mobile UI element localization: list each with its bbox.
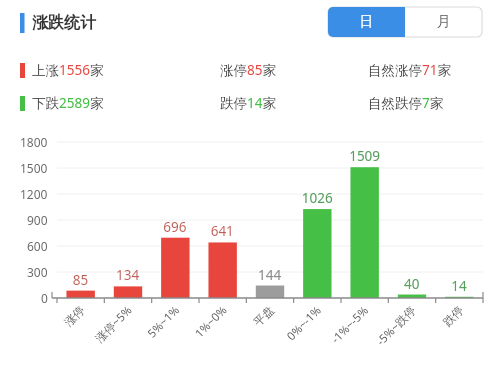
button[interactable]: 日: [328, 7, 405, 37]
button[interactable]: 下跌2589家: [18, 91, 148, 117]
button[interactable]: 自然跌停7家: [362, 91, 492, 117]
button[interactable]: 月: [405, 7, 482, 37]
button[interactable]: 涨停85家: [214, 58, 344, 84]
button[interactable]: 涨跌统计: [14, 8, 134, 38]
button[interactable]: 上涨1556家: [18, 58, 148, 84]
button[interactable]: 自然涨停71家: [362, 58, 492, 84]
button[interactable]: 跌停14家: [214, 91, 344, 117]
button[interactable]: 涨跌分布柱状图: [52, 136, 484, 306]
